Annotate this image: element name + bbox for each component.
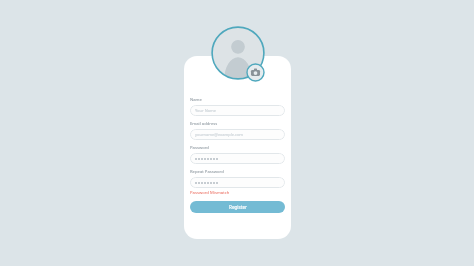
button[interactable]: yourname@example.com — [190, 129, 285, 140]
staticText: yourname@example.com — [195, 132, 244, 137]
button[interactable]: Register — [190, 201, 285, 213]
staticText: Register — [229, 204, 247, 210]
staticText: Password Mismatch — [190, 190, 230, 196]
button[interactable]: Your Name — [190, 105, 285, 116]
staticText: Your Name — [195, 108, 216, 113]
staticText: Repeat Password — [190, 169, 224, 175]
button[interactable] — [190, 177, 285, 188]
staticText: Password — [190, 145, 209, 151]
button[interactable]: Profile photo — [211, 26, 265, 80]
button[interactable] — [190, 153, 285, 164]
button[interactable]: Change profile photo — [246, 63, 265, 82]
staticText: Email address — [190, 121, 218, 127]
staticText: Name — [190, 97, 202, 103]
